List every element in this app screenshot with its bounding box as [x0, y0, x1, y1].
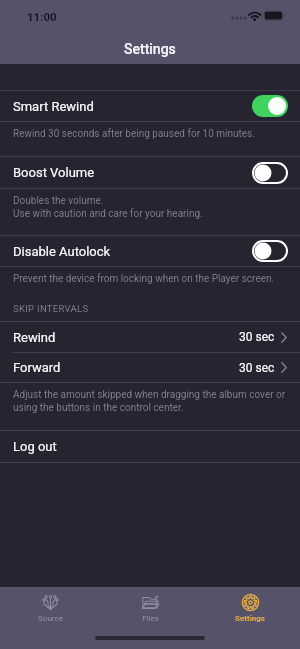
- button[interactable]: Forward: [0, 353, 300, 382]
- button[interactable]: Rewind: [0, 322, 300, 352]
- button[interactable]: Boost Volume: [0, 157, 300, 188]
- staticText: Files: [142, 614, 159, 623]
- staticText: Smart Rewind: [13, 99, 94, 114]
- button[interactable]: Toggle off: [252, 162, 288, 184]
- staticText: Source: [38, 614, 63, 623]
- staticText: Disable Autolock: [13, 244, 111, 259]
- staticText: 30 sec: [239, 330, 275, 344]
- button[interactable]: Settings: [200, 587, 300, 623]
- button[interactable]: Log out: [0, 431, 300, 462]
- staticText: 11:00: [27, 10, 57, 23]
- button[interactable]: Files: [100, 587, 200, 623]
- staticText: Boost Volume: [13, 165, 95, 180]
- staticText: Forward: [13, 360, 61, 375]
- button[interactable]: Toggle on: [252, 95, 288, 117]
- staticText: Rewind 30 seconds after being paused for…: [13, 128, 255, 140]
- staticText: Adjust the amount skipped when dragging …: [13, 389, 286, 414]
- staticText: Prevent the device from locking when on …: [13, 273, 275, 285]
- staticText: 30 sec: [239, 361, 275, 375]
- staticText: Rewind: [13, 330, 56, 345]
- staticText: Doubles the volume. Use with caution and…: [13, 195, 203, 220]
- staticText: Settings: [124, 41, 176, 57]
- staticText: SKIP INTERVALS: [13, 303, 89, 314]
- staticText: Log out: [13, 439, 57, 454]
- button[interactable]: Source: [0, 587, 100, 623]
- button[interactable]: Disable Autolock: [0, 236, 300, 266]
- button[interactable]: Toggle off: [252, 240, 288, 262]
- button[interactable]: Smart Rewind: [0, 91, 300, 121]
- staticText: Settings: [235, 614, 265, 623]
